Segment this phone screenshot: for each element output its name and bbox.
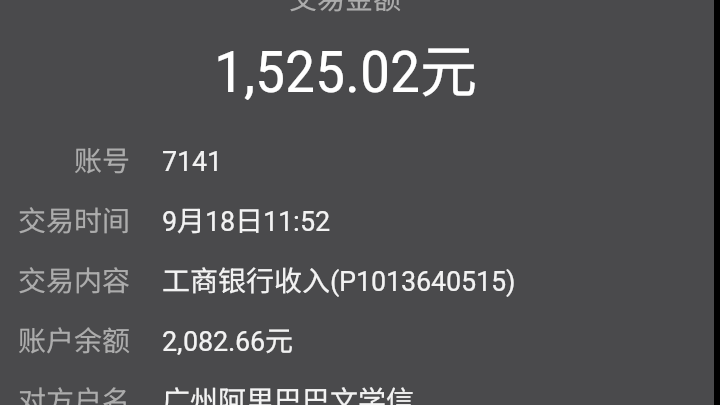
button[interactable]: Transaction detail: [0, 0, 720, 405]
